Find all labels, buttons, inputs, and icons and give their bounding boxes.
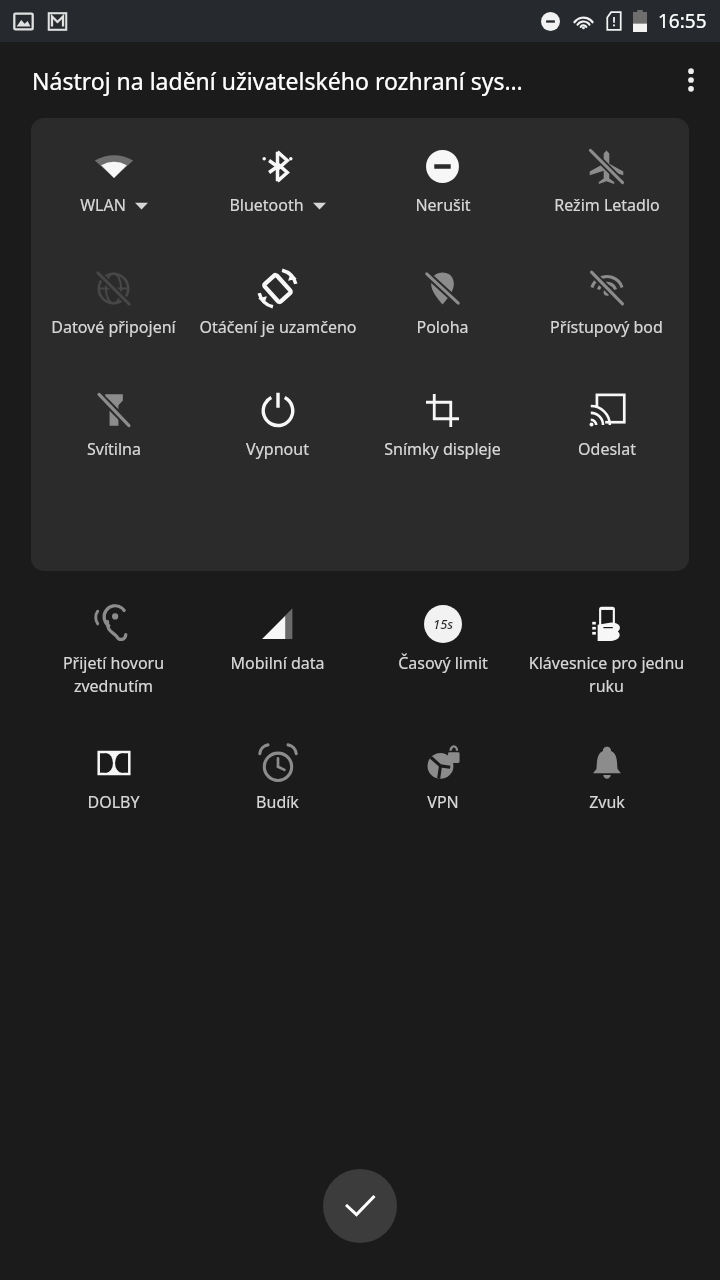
staticText: Mobilní data [230,652,325,674]
button[interactable]: Datové připojení [32,260,195,338]
staticText: Poloha [416,316,469,338]
button[interactable]: Otáčení je uzamčeno [196,260,359,338]
button[interactable]: Bluetooth [196,138,359,216]
button[interactable]: WLAN [32,138,195,216]
staticText: Přijetí hovoru zvednutím [32,652,195,697]
button[interactable]: VPN [361,735,524,813]
button[interactable]: Odeslat [525,382,688,460]
button[interactable]: Poloha [361,260,524,338]
staticText: 16:55 [658,8,707,34]
staticText: Přístupový bod [550,316,663,338]
staticText: Snímky displeje [384,438,501,460]
staticText: Vypnout [246,438,309,460]
button[interactable]: Režim Letadlo [525,138,688,216]
staticText: Odeslat [578,438,636,460]
staticText: DOLBY [87,791,140,813]
button[interactable]: 15s [361,596,524,674]
staticText: WLAN [80,194,126,216]
button[interactable]: Přístupový bod [525,260,688,338]
staticText: Bluetooth [229,194,304,216]
staticText: VPN [427,791,459,813]
staticText: Zvuk [589,791,625,813]
button[interactable]: More options [662,51,720,109]
staticText: 15s [433,615,454,633]
button[interactable]: Vypnout [196,382,359,460]
button[interactable]: Přijetí hovoru zvednutím [32,596,195,697]
staticText: Nástroj na ladění uživatelského rozhraní… [32,65,523,96]
button[interactable]: Nerušit [361,138,524,216]
button[interactable]: Snímky displeje [361,382,524,460]
staticText: Budík [256,791,299,813]
staticText: Datové připojení [51,316,176,338]
button[interactable]: Done [323,1169,397,1243]
button[interactable]: Mobilní data [196,596,359,674]
button[interactable]: Svítilna [32,382,195,460]
staticText: Režim Letadlo [554,194,660,216]
button[interactable]: Budík [196,735,359,813]
staticText: Otáčení je uzamčeno [199,316,357,338]
staticText: Nerušit [415,194,471,216]
button[interactable]: DOLBY [32,735,195,813]
staticText: Klávesnice pro jednu ruku [525,652,688,697]
button[interactable]: Klávesnice pro jednu ruku [525,596,688,697]
button[interactable]: Zvuk [525,735,688,813]
staticText: Svítilna [87,438,141,460]
staticText: Časový limit [398,652,488,674]
